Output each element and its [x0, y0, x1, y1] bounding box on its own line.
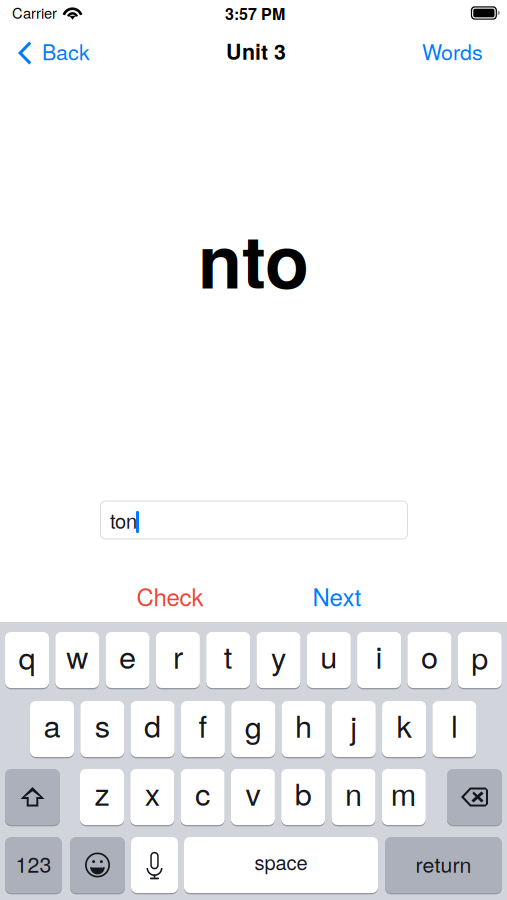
- staticText: v: [245, 770, 260, 814]
- staticText: space: [254, 847, 307, 876]
- staticText: i: [376, 633, 383, 677]
- staticText: c: [195, 770, 210, 814]
- staticText: z: [94, 770, 109, 814]
- staticText: Unit 3: [226, 36, 286, 66]
- button[interactable]: b: [281, 769, 325, 825]
- staticText: y: [271, 634, 286, 678]
- staticText: d: [144, 702, 161, 746]
- staticText: a: [43, 702, 60, 746]
- button[interactable]: k: [382, 701, 426, 757]
- staticText: f: [198, 702, 207, 746]
- button[interactable]: h: [281, 701, 325, 757]
- staticText: Check: [136, 579, 203, 613]
- button[interactable]: v: [231, 769, 275, 825]
- staticText: q: [18, 634, 35, 678]
- button[interactable]: Dictation: [131, 837, 178, 893]
- staticText: nto: [198, 207, 309, 310]
- staticText: p: [471, 634, 488, 678]
- button[interactable]: Next: [282, 579, 392, 613]
- button[interactable]: m: [382, 769, 426, 825]
- staticText: Words: [422, 36, 483, 66]
- button[interactable]: e: [106, 632, 150, 688]
- staticText: b: [295, 770, 312, 814]
- button[interactable]: f: [181, 701, 225, 757]
- staticText: k: [397, 702, 412, 746]
- button[interactable]: r: [156, 632, 200, 688]
- button[interactable]: y: [256, 632, 300, 688]
- button[interactable]: z: [80, 769, 124, 825]
- button[interactable]: c: [181, 769, 225, 825]
- staticText: t: [224, 633, 233, 677]
- button[interactable]: d: [131, 701, 175, 757]
- staticText: Carrier: [12, 2, 57, 23]
- staticText: w: [66, 633, 88, 677]
- staticText: r: [173, 633, 183, 677]
- button[interactable]: Delete: [447, 769, 502, 825]
- button[interactable]: a: [30, 701, 74, 757]
- button[interactable]: Emoji: [70, 837, 125, 893]
- staticText: u: [320, 633, 337, 677]
- staticText: ton: [110, 506, 137, 534]
- staticText: 123: [15, 848, 51, 879]
- button[interactable]: j: [332, 701, 376, 757]
- staticText: n: [345, 770, 362, 814]
- button[interactable]: i: [357, 632, 401, 688]
- button[interactable]: Shift: [5, 769, 60, 825]
- button[interactable]: 123: [5, 837, 62, 893]
- button[interactable]: x: [130, 769, 174, 825]
- staticText: m: [391, 770, 417, 814]
- staticText: x: [145, 770, 160, 814]
- button[interactable]: w: [55, 632, 99, 688]
- staticText: o: [421, 633, 438, 677]
- button[interactable]: g: [231, 701, 275, 757]
- staticText: h: [295, 702, 312, 746]
- staticText: e: [119, 633, 136, 677]
- staticText: return: [415, 848, 471, 879]
- staticText: Back: [42, 36, 90, 66]
- button[interactable]: l: [432, 701, 476, 757]
- button[interactable]: Back: [17, 28, 90, 74]
- staticText: s: [95, 702, 110, 746]
- button[interactable]: Check: [115, 579, 225, 613]
- staticText: 3:57 PM: [225, 2, 285, 25]
- staticText: g: [245, 703, 262, 747]
- staticText: j: [350, 703, 357, 747]
- button[interactable]: n: [331, 769, 375, 825]
- button[interactable]: o: [407, 632, 451, 688]
- button[interactable]: Words: [422, 28, 483, 74]
- button[interactable]: return: [385, 837, 502, 893]
- staticText: Next: [312, 579, 361, 613]
- button[interactable]: u: [307, 632, 351, 688]
- button[interactable]: s: [80, 701, 124, 757]
- button[interactable]: q: [5, 632, 49, 688]
- button[interactable]: t: [206, 632, 250, 688]
- staticText: l: [451, 702, 458, 746]
- button[interactable]: p: [458, 632, 502, 688]
- button[interactable]: space: [184, 837, 378, 893]
